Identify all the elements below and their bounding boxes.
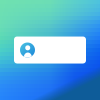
button[interactable]: Profile (14, 36, 86, 63)
